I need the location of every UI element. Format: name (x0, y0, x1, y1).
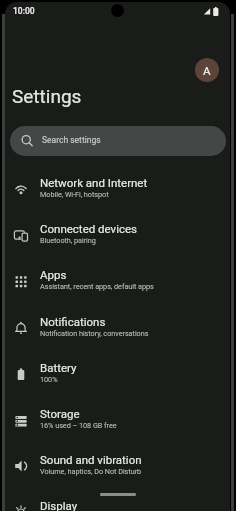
staticText: A (203, 64, 211, 77)
staticText: Display (40, 499, 78, 511)
button[interactable]: Search settings (10, 126, 226, 156)
button[interactable]: Network and Internet (5, 166, 230, 212)
staticText: Mobile, Wi-Fi, hotspot (40, 190, 109, 199)
staticText: Bluetooth, pairing (40, 236, 96, 245)
button[interactable]: Battery (5, 351, 230, 397)
button[interactable]: Display (5, 489, 230, 511)
staticText: Notification history, conversations (40, 329, 149, 338)
button[interactable]: Sound and vibration (5, 443, 230, 489)
button[interactable]: Storage (5, 397, 230, 443)
staticText: Search settings (42, 135, 101, 145)
staticText: Assistant, recent apps, default apps (40, 282, 154, 291)
staticText: Battery (40, 361, 77, 374)
button[interactable]: Apps (5, 258, 230, 304)
staticText: 100% (40, 375, 58, 384)
button[interactable]: Connected devices (5, 212, 230, 258)
staticText: Apps (40, 268, 67, 281)
staticText: 16% used – 108 GB free (40, 421, 117, 430)
staticText: Settings (12, 85, 82, 107)
staticText: Notifications (40, 315, 106, 328)
staticText: Network and Internet (40, 176, 148, 189)
staticText: Sound and vibration (40, 453, 142, 466)
staticText: Storage (40, 407, 80, 420)
staticText: Volume, haptics, Do Not Disturb (40, 467, 142, 476)
button[interactable]: Notifications (5, 305, 230, 351)
button[interactable]: A (195, 58, 219, 82)
staticText: 10:00 (13, 6, 35, 16)
staticText: Connected devices (40, 222, 137, 235)
